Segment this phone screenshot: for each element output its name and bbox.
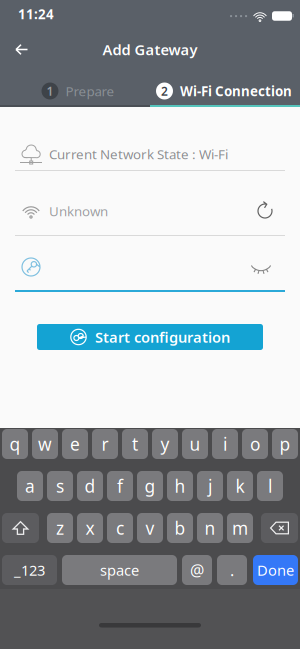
- button[interactable]: 1: [0, 67, 150, 105]
- staticText: r: [101, 432, 108, 455]
- button[interactable]: 2: [150, 67, 300, 105]
- staticText: _123: [14, 560, 45, 580]
- button[interactable]: h: [167, 471, 193, 501]
- staticText: Add Gateway: [102, 40, 197, 59]
- button[interactable]: Start configuration: [37, 324, 263, 350]
- staticText: Start configuration: [95, 327, 230, 347]
- button[interactable]: Back: [0, 30, 28, 65]
- staticText: u: [189, 432, 200, 455]
- staticText: Done: [257, 560, 294, 580]
- button[interactable]: @: [182, 555, 212, 585]
- button[interactable]: l: [257, 471, 283, 501]
- staticText: d: [84, 474, 95, 497]
- staticText: v: [145, 516, 154, 539]
- staticText: y: [160, 432, 169, 455]
- staticText: c: [116, 516, 124, 539]
- staticText: i: [223, 432, 227, 455]
- staticText: e: [70, 432, 80, 455]
- button[interactable]: s: [47, 471, 73, 501]
- staticText: p: [279, 432, 290, 455]
- button[interactable]: space: [62, 555, 177, 585]
- button[interactable]: Delete: [261, 513, 298, 543]
- staticText: a: [25, 474, 35, 497]
- staticText: t: [132, 432, 138, 455]
- staticText: z: [56, 516, 64, 539]
- button[interactable]: [0, 256, 300, 278]
- staticText: s: [56, 474, 64, 497]
- button[interactable]: y: [152, 429, 178, 459]
- staticText: q: [9, 432, 20, 455]
- staticText: Wi-Fi Connection: [180, 82, 292, 100]
- button[interactable]: v: [137, 513, 163, 543]
- button[interactable]: n: [197, 513, 223, 543]
- button[interactable]: b: [167, 513, 193, 543]
- button[interactable]: Shift: [2, 513, 39, 543]
- staticText: @: [190, 559, 204, 581]
- button[interactable]: u: [182, 429, 208, 459]
- staticText: n: [204, 516, 215, 539]
- button[interactable]: w: [32, 429, 58, 459]
- button[interactable]: a: [17, 471, 43, 501]
- staticText: space: [100, 560, 139, 580]
- button[interactable]: d: [77, 471, 103, 501]
- staticText: b: [174, 516, 185, 539]
- button[interactable]: x: [77, 513, 103, 543]
- staticText: x: [85, 516, 94, 539]
- staticText: 11:24: [18, 5, 54, 23]
- staticText: h: [174, 474, 185, 497]
- button[interactable]: t: [122, 429, 148, 459]
- button[interactable]: f: [107, 471, 133, 501]
- staticText: 1: [46, 83, 53, 99]
- staticText: m: [232, 516, 248, 539]
- button[interactable]: p: [272, 429, 298, 459]
- staticText: k: [235, 474, 244, 497]
- button[interactable]: Unknown: [0, 200, 300, 222]
- button[interactable]: j: [197, 471, 223, 501]
- staticText: f: [117, 474, 123, 497]
- staticText: 2: [161, 83, 168, 99]
- staticText: j: [208, 474, 212, 497]
- button[interactable]: k: [227, 471, 253, 501]
- button[interactable]: c: [107, 513, 133, 543]
- staticText: g: [144, 474, 155, 497]
- staticText: Unknown: [49, 202, 108, 220]
- button[interactable]: o: [242, 429, 268, 459]
- button[interactable]: Show password: [251, 264, 271, 275]
- staticText: Current Network State : Wi-Fi: [49, 145, 228, 163]
- button[interactable]: i: [212, 429, 238, 459]
- button[interactable]: q: [2, 429, 28, 459]
- button[interactable]: Refresh network list: [256, 202, 275, 220]
- staticText: Prepare: [65, 82, 114, 100]
- staticText: o: [250, 432, 260, 455]
- button[interactable]: g: [137, 471, 163, 501]
- button[interactable]: Done: [253, 555, 298, 585]
- button[interactable]: e: [62, 429, 88, 459]
- button[interactable]: m: [227, 513, 253, 543]
- button[interactable]: r: [92, 429, 118, 459]
- button[interactable]: _123: [2, 555, 57, 585]
- staticText: l: [268, 474, 272, 497]
- button[interactable]: .: [217, 555, 247, 585]
- button[interactable]: z: [47, 513, 73, 543]
- staticText: .: [230, 559, 234, 581]
- staticText: w: [38, 432, 52, 455]
